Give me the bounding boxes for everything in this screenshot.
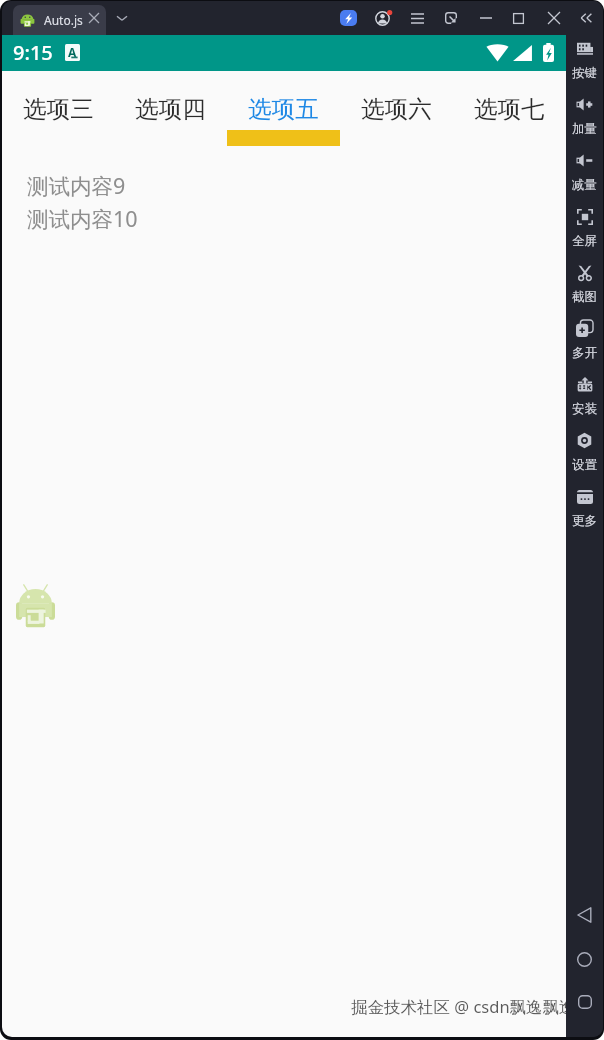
- button[interactable]: Restore: [439, 6, 463, 30]
- button[interactable]: Home: [566, 944, 603, 974]
- button[interactable]: Close tab: [83, 7, 105, 29]
- button[interactable]: Accelerate: [340, 10, 357, 26]
- button[interactable]: Menu: [405, 6, 429, 30]
- staticText: 按键: [572, 65, 597, 81]
- button[interactable]: 加量: [566, 93, 603, 137]
- staticText: 选项五: [248, 94, 319, 124]
- staticText: A: [68, 44, 77, 60]
- staticText: 加量: [572, 121, 597, 137]
- button[interactable]: Recents: [566, 987, 603, 1017]
- staticText: 掘金技术社区 @ csdn飘逸飘逸: [351, 995, 576, 1018]
- button[interactable]: 设置: [566, 429, 603, 473]
- button[interactable]: 选项六: [340, 71, 453, 146]
- staticText: 选项四: [135, 94, 206, 124]
- button[interactable]: Tab list: [110, 6, 134, 30]
- staticText: 设置: [572, 457, 597, 473]
- button[interactable]: 截图: [566, 261, 603, 305]
- button[interactable]: Collapse sidebar: [574, 6, 598, 30]
- button[interactable]: Back: [566, 900, 603, 930]
- button[interactable]: Minimize: [474, 6, 498, 30]
- staticText: 测试内容10: [27, 204, 138, 233]
- button[interactable]: 选项七: [453, 71, 566, 146]
- button[interactable]: 多开: [566, 317, 603, 361]
- staticText: 更多: [572, 513, 597, 529]
- button[interactable]: 按键: [566, 37, 603, 81]
- staticText: Auto.js: [44, 12, 83, 28]
- staticText: 截图: [572, 289, 597, 305]
- button[interactable]: 减量: [566, 149, 603, 193]
- staticText: 选项六: [361, 94, 432, 124]
- staticText: 多开: [572, 345, 597, 361]
- button[interactable]: 选项五: [227, 71, 340, 146]
- staticText: 减量: [572, 177, 597, 193]
- button[interactable]: 选项四: [114, 71, 227, 146]
- staticText: 选项三: [23, 94, 94, 124]
- button[interactable]: 全屏: [566, 205, 603, 249]
- staticText: 选项七: [474, 94, 545, 124]
- button[interactable]: 更多: [566, 485, 603, 529]
- staticText: 安装: [572, 401, 597, 417]
- staticText: 全屏: [572, 233, 597, 249]
- button[interactable]: Maximize: [506, 6, 530, 30]
- button[interactable]: Auto.js: [13, 5, 106, 35]
- button[interactable]: 选项三: [2, 71, 114, 146]
- button[interactable]: 安装: [566, 373, 603, 417]
- staticText: 9:15: [13, 39, 53, 66]
- button[interactable]: Account: [370, 6, 394, 30]
- staticText: 测试内容9: [27, 171, 126, 200]
- button[interactable]: Close: [542, 6, 566, 30]
